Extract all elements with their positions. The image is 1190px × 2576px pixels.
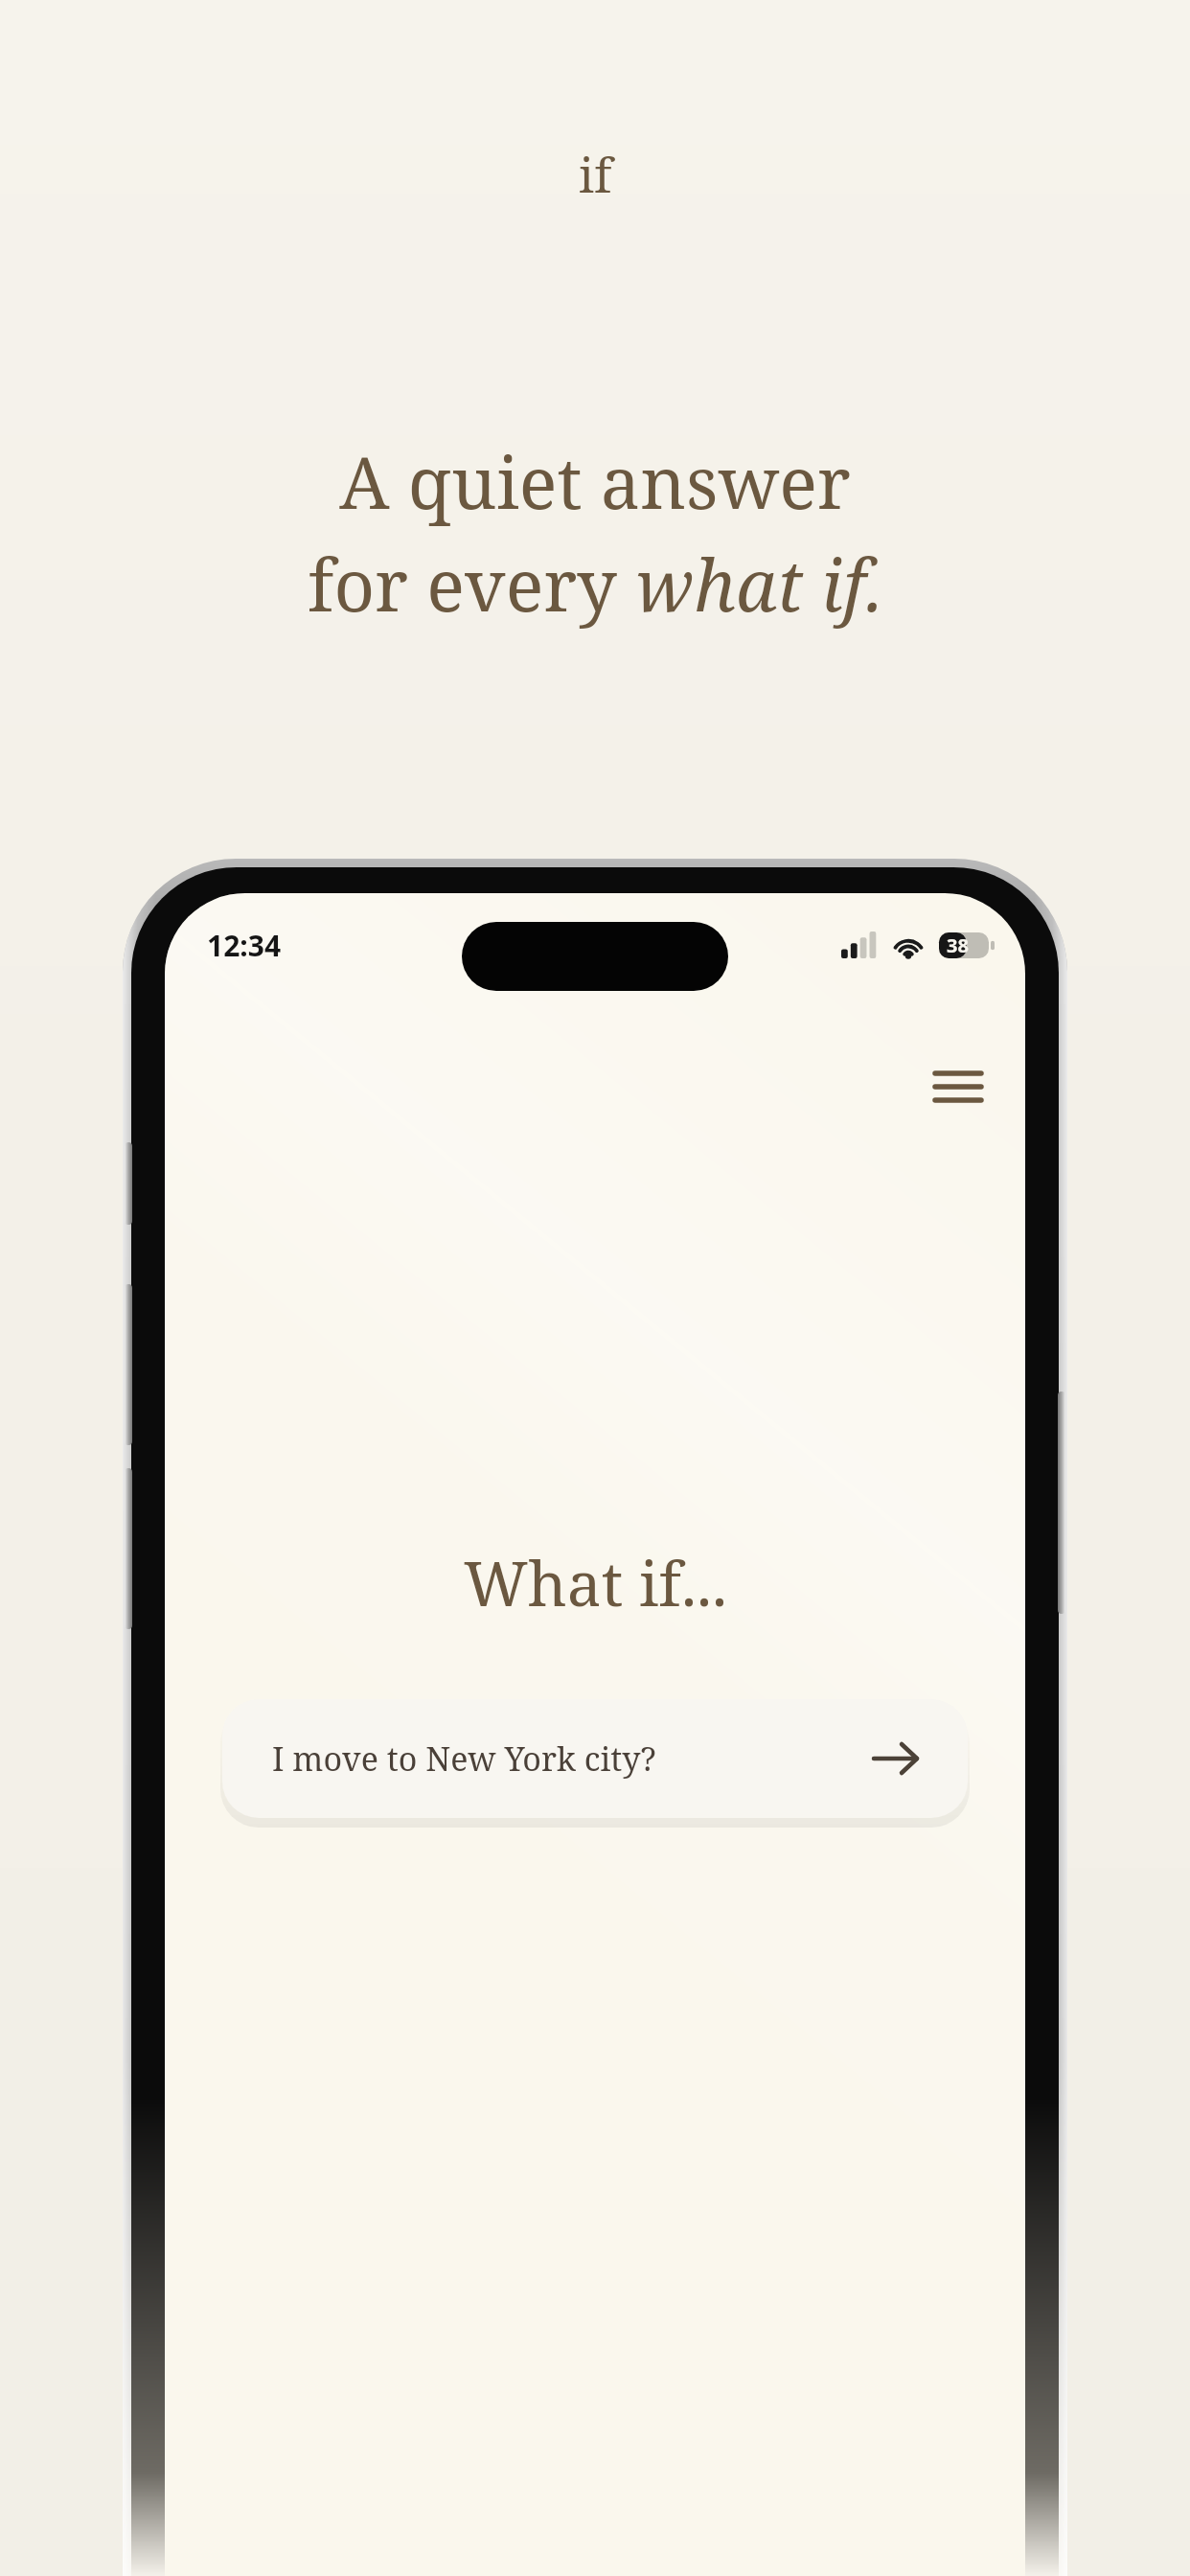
staticText: 12:34 [207, 926, 282, 965]
staticText: What if... [464, 1541, 727, 1624]
other: Volume down [125, 1468, 132, 1629]
button[interactable]: I move to New York city? [222, 1699, 968, 1818]
staticText: I move to New York city? [272, 1736, 874, 1781]
staticText: A quiet answer [339, 433, 851, 530]
button[interactable]: Menu [918, 1046, 998, 1127]
staticText: if [579, 142, 612, 207]
other: Power [1058, 1391, 1065, 1614]
staticText: 38 [947, 932, 969, 958]
staticText: for every what if. [308, 536, 883, 632]
other: Volume up [125, 1284, 132, 1445]
other: Silent switch [125, 1142, 132, 1225]
